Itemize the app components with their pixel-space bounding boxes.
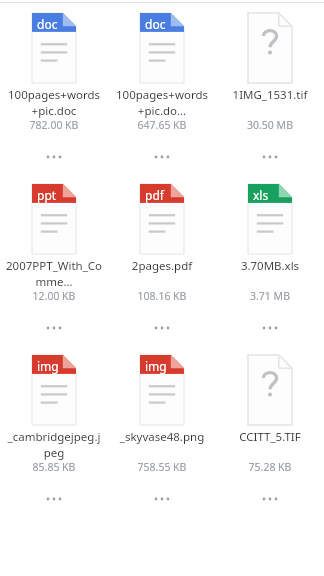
button[interactable]: CCITT_5.TIF: [216, 355, 324, 526]
button[interactable]: ppt: [0, 184, 108, 355]
staticText: img: [37, 358, 59, 374]
staticText: 2pages.pdf: [113, 258, 211, 274]
staticText: 3.70MB.xls: [221, 258, 319, 274]
staticText: doc: [145, 16, 166, 32]
staticText: 108.16 KB: [110, 289, 214, 303]
button[interactable]: More options: [145, 490, 179, 508]
button[interactable]: img: [108, 355, 216, 526]
staticText: ppt: [37, 187, 57, 203]
staticText: 100pages+words+pic.do…: [113, 87, 211, 118]
button[interactable]: xls: [216, 184, 324, 355]
staticText: _skyvase48.png: [113, 429, 211, 445]
button[interactable]: img: [0, 355, 108, 526]
staticText: 782.00 KB: [2, 118, 106, 132]
staticText: _cambridgejpeg.jpeg: [5, 429, 103, 460]
button[interactable]: More options: [145, 319, 179, 337]
button[interactable]: More options: [145, 148, 179, 166]
staticText: 758.55 KB: [110, 460, 214, 474]
button[interactable]: More options: [253, 148, 287, 166]
button[interactable]: 1IMG_1531.tif: [216, 13, 324, 184]
button[interactable]: More options: [253, 490, 287, 508]
staticText: 647.65 KB: [110, 118, 214, 132]
button[interactable]: More options: [37, 148, 71, 166]
staticText: CCITT_5.TIF: [221, 429, 319, 445]
staticText: 30.50 MB: [218, 118, 322, 132]
staticText: 1IMG_1531.tif: [221, 87, 319, 103]
button[interactable]: doc: [108, 13, 216, 184]
staticText: 85.85 KB: [2, 460, 106, 474]
staticText: img: [145, 358, 167, 374]
button[interactable]: More options: [253, 319, 287, 337]
button[interactable]: More options: [37, 490, 71, 508]
button[interactable]: doc: [0, 13, 108, 184]
staticText: pdf: [145, 187, 164, 203]
button[interactable]: More options: [37, 319, 71, 337]
staticText: 2007PPT_With_Comme…: [5, 258, 103, 289]
staticText: doc: [37, 16, 58, 32]
staticText: 3.71 MB: [218, 289, 322, 303]
button[interactable]: pdf: [108, 184, 216, 355]
staticText: 12.00 KB: [2, 289, 106, 303]
staticText: 100pages+words+pic.doc: [5, 87, 103, 118]
staticText: 75.28 KB: [218, 460, 322, 474]
staticText: xls: [253, 187, 269, 203]
